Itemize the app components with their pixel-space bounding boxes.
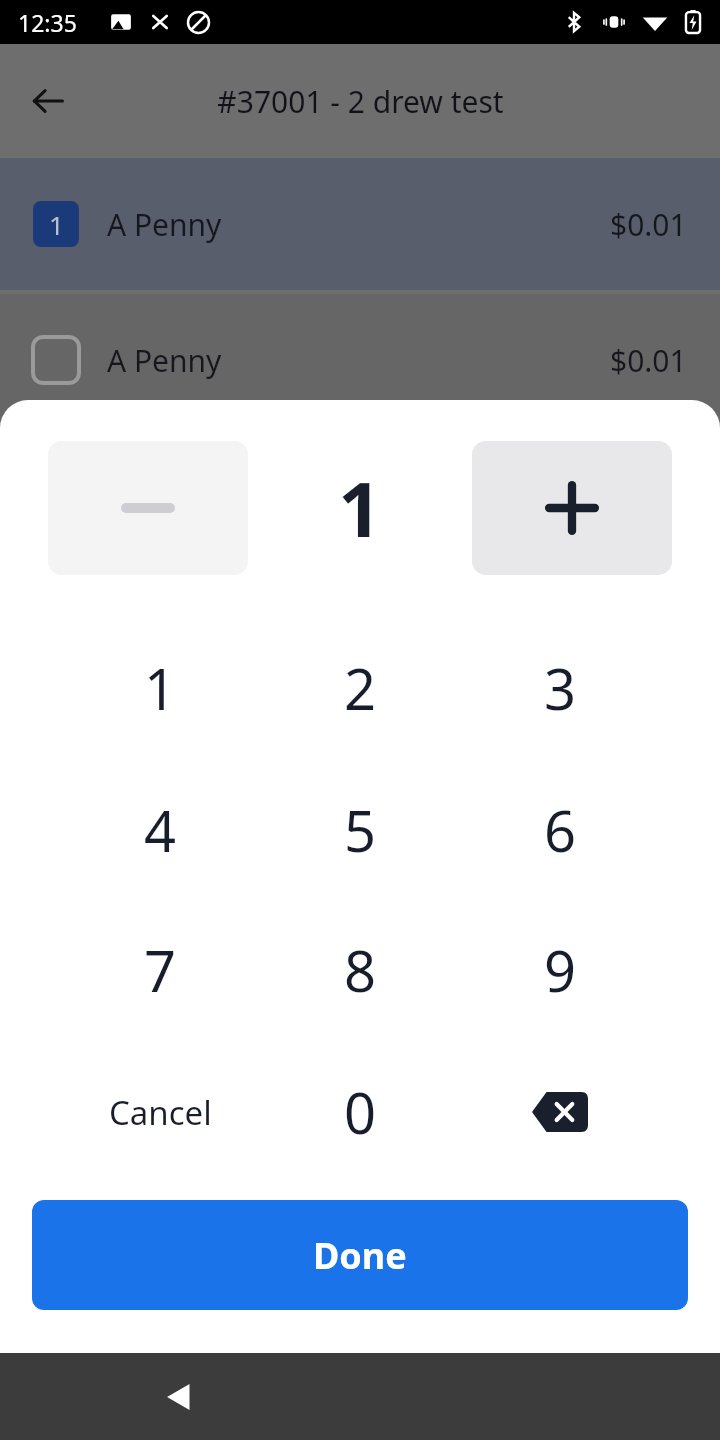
button[interactable]: Done bbox=[32, 1200, 688, 1310]
staticText: 6 bbox=[544, 792, 577, 868]
staticText: 9 bbox=[544, 932, 577, 1008]
button[interactable]: Back bbox=[14, 67, 82, 135]
staticText: 0 bbox=[344, 1074, 377, 1150]
button[interactable]: 1 bbox=[0, 158, 720, 290]
button[interactable]: Backspace bbox=[470, 1046, 650, 1178]
staticText: Done bbox=[313, 1231, 407, 1280]
staticText: $0.01 bbox=[610, 340, 687, 381]
button[interactable]: 5 bbox=[270, 764, 450, 896]
staticText: 5 bbox=[344, 792, 377, 868]
staticText: 4 bbox=[144, 792, 177, 868]
staticText: 1 bbox=[49, 207, 64, 242]
button[interactable]: 0 bbox=[270, 1046, 450, 1178]
staticText: 1 bbox=[144, 650, 177, 726]
button[interactable]: Cancel bbox=[70, 1046, 250, 1178]
staticText: $0.01 bbox=[610, 204, 687, 245]
staticText: 3 bbox=[544, 650, 577, 726]
button[interactable]: A Penny bbox=[0, 294, 720, 426]
button[interactable]: 2 bbox=[270, 622, 450, 754]
button[interactable]: Back bbox=[140, 1353, 220, 1440]
button[interactable]: 1 bbox=[70, 622, 250, 754]
staticText: 1 bbox=[338, 456, 382, 560]
button[interactable]: Increase bbox=[472, 441, 672, 575]
staticText: 7 bbox=[144, 932, 177, 1008]
staticText: A Penny bbox=[107, 204, 222, 245]
button[interactable]: 7 bbox=[70, 904, 250, 1036]
button[interactable]: 8 bbox=[270, 904, 450, 1036]
staticText: #37001 - 2 drew test bbox=[217, 81, 504, 122]
button[interactable]: 9 bbox=[470, 904, 650, 1036]
staticText: 2 bbox=[344, 650, 377, 726]
button[interactable]: Decrease bbox=[48, 441, 248, 575]
staticText: Cancel bbox=[109, 1090, 212, 1135]
button[interactable]: 4 bbox=[70, 764, 250, 896]
staticText: A Penny bbox=[107, 340, 222, 381]
button[interactable]: 3 bbox=[470, 622, 650, 754]
staticText: 12:35 bbox=[18, 7, 77, 38]
button[interactable]: 6 bbox=[470, 764, 650, 896]
staticText: 8 bbox=[344, 932, 377, 1008]
